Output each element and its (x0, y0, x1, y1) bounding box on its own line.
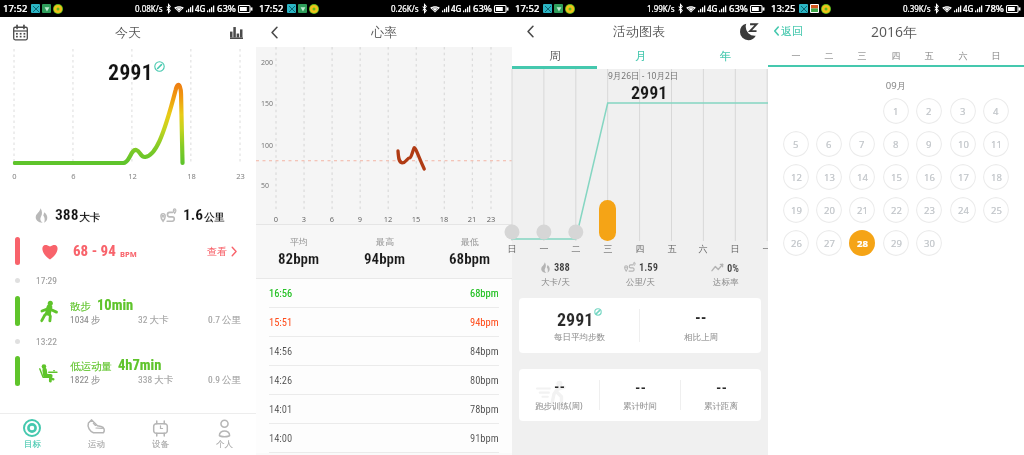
button[interactable]: 11 (983, 131, 1009, 157)
button[interactable]: 15 (883, 164, 909, 190)
staticText: 14:26 (269, 374, 293, 386)
staticText: BPM (120, 249, 137, 259)
staticText: 50 (261, 181, 270, 191)
button[interactable]: 13 (816, 164, 842, 190)
staticText: 2991 (557, 309, 594, 330)
button[interactable]: 12 (783, 164, 809, 190)
staticText: 100 (261, 141, 274, 151)
staticText: 1.6 (183, 206, 204, 224)
button[interactable]: 20 (816, 197, 842, 223)
button[interactable]: Back (520, 21, 540, 41)
button[interactable]: Back (264, 22, 284, 42)
staticText: 18 (438, 214, 450, 224)
staticText: 14:00 (269, 432, 293, 444)
staticText: 大卡/天 (541, 276, 570, 288)
staticText: 2991 (631, 82, 668, 103)
button[interactable]: 3 (950, 98, 976, 124)
staticText: 低运动量 (70, 360, 112, 373)
button[interactable]: 29 (883, 230, 909, 256)
button[interactable]: 7 (849, 131, 875, 157)
staticText: 14:56 (269, 345, 293, 357)
button[interactable]: 19 (783, 197, 809, 223)
staticText: 80bpm (470, 374, 499, 386)
button[interactable]: 26 (783, 230, 809, 256)
staticText: 09月 (768, 79, 1024, 92)
staticText: 17:52 (259, 2, 284, 15)
staticText: 大卡 (79, 211, 100, 224)
staticText: 0% (727, 262, 740, 274)
button[interactable]: 14:01 (256, 395, 512, 423)
button[interactable]: 16:56 (256, 279, 512, 307)
staticText: -- (716, 379, 727, 397)
staticText: 17:52 (515, 2, 540, 15)
staticText: 月 (635, 49, 647, 63)
staticText: 4 (993, 105, 999, 118)
button[interactable]: 21 (849, 197, 875, 223)
staticText: 24 (958, 204, 969, 217)
button[interactable]: 周 (512, 45, 598, 66)
button[interactable]: 6 (816, 131, 842, 157)
button[interactable]: 低运动量 (0, 350, 256, 392)
staticText: 14 (857, 171, 868, 184)
staticText: 最低 (461, 236, 479, 247)
button[interactable]: 14:00 (256, 424, 512, 452)
staticText: 18 (991, 171, 1002, 184)
button[interactable]: Calendar (9, 21, 31, 43)
button[interactable]: 18 (983, 164, 1009, 190)
button[interactable]: 25 (983, 197, 1009, 223)
staticText: 23 (235, 171, 246, 181)
staticText: 3 (298, 214, 310, 224)
button[interactable]: 9 (916, 131, 942, 157)
staticText: 0.26K/s (391, 3, 419, 14)
button[interactable]: 个人 (192, 414, 256, 455)
button[interactable]: 10 (950, 131, 976, 157)
staticText: 累计时间 (623, 401, 657, 412)
button[interactable]: 2 (916, 98, 942, 124)
staticText: 0.08K/s (135, 3, 163, 14)
staticText: 23 (485, 214, 497, 224)
button[interactable]: 17 (950, 164, 976, 190)
staticText: 14:01 (269, 403, 293, 415)
button[interactable]: 5 (783, 131, 809, 157)
button[interactable]: 14:56 (256, 337, 512, 365)
button[interactable]: 23 (916, 197, 942, 223)
staticText: 最高 (376, 236, 394, 247)
button[interactable]: 8 (883, 131, 909, 157)
button[interactable]: 30 (916, 230, 942, 256)
button[interactable]: 16 (916, 164, 942, 190)
button[interactable]: 1 (883, 98, 909, 124)
staticText: 94bpm (470, 316, 499, 328)
button[interactable]: 22 (883, 197, 909, 223)
button[interactable]: Statistics (225, 21, 247, 43)
staticText: 150 (261, 99, 274, 109)
staticText: 一 (537, 243, 551, 254)
button[interactable]: 月 (598, 45, 683, 66)
button[interactable]: 27 (816, 230, 842, 256)
button[interactable]: Sleep (738, 20, 760, 42)
staticText: 运动 (88, 439, 105, 450)
button[interactable]: 28 (849, 230, 875, 256)
staticText: 1.99K/s (647, 3, 675, 14)
button[interactable]: 15:51 (256, 308, 512, 336)
button[interactable]: 年 (683, 45, 768, 66)
button[interactable]: 24 (950, 197, 976, 223)
staticText: 五 (921, 50, 937, 61)
button[interactable]: 散步 (0, 290, 256, 332)
button[interactable]: 4 (983, 98, 1009, 124)
button[interactable]: 返回 (772, 20, 805, 42)
staticText: 9月26日 - 10月2日 (608, 70, 679, 82)
staticText: 周 (549, 49, 561, 63)
button[interactable]: 运动 (64, 414, 128, 455)
staticText: 19 (791, 204, 802, 217)
button[interactable]: 目标 (0, 414, 64, 455)
staticText: 目标 (24, 439, 41, 450)
button[interactable]: 14:26 (256, 366, 512, 394)
button[interactable]: 设备 (128, 414, 192, 455)
button[interactable]: 68 - 94 (0, 234, 256, 268)
staticText: 查看 (207, 245, 227, 258)
staticText: 388 (554, 261, 570, 273)
button[interactable]: 14 (849, 164, 875, 190)
staticText: 今天 (115, 24, 141, 40)
staticText: 每日平均步数 (554, 332, 605, 343)
staticText: 94bpm (364, 250, 406, 268)
